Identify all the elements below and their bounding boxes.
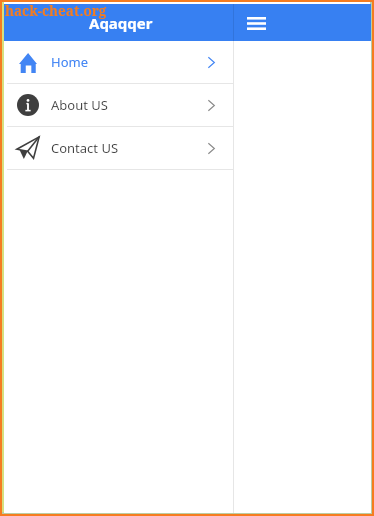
staticText: Contact US <box>51 139 119 157</box>
staticText: Home <box>51 53 88 71</box>
button[interactable]: Open navigation menu <box>241 8 271 38</box>
staticText: About US <box>51 96 108 114</box>
button[interactable]: About US <box>4 84 233 126</box>
button[interactable]: Home <box>4 41 233 83</box>
button[interactable]: Contact US <box>4 127 233 169</box>
staticText: hack-cheat.org <box>5 2 107 20</box>
staticText: Aqaqqer <box>89 13 153 33</box>
